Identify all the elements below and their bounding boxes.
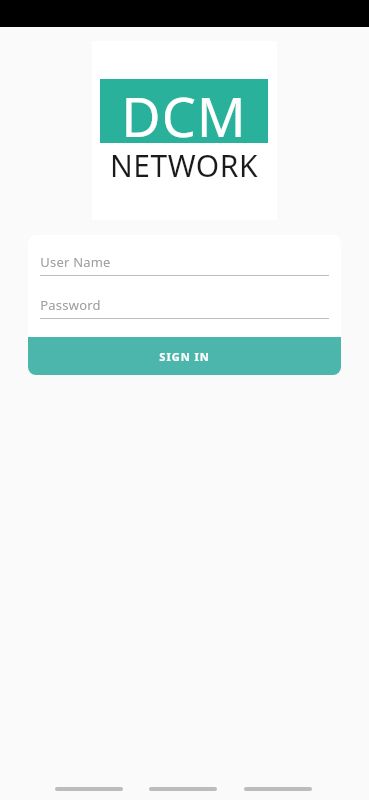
button[interactable]: Home	[149, 779, 217, 799]
button[interactable]: SIGN IN	[28, 337, 341, 375]
staticText: User Name	[40, 253, 111, 271]
staticText: SIGN IN	[159, 349, 210, 364]
button[interactable]: Password	[40, 295, 329, 319]
button[interactable]: Recents	[244, 779, 312, 799]
staticText: DCM	[121, 79, 247, 143]
button[interactable]: User Name	[40, 252, 329, 276]
staticText: NETWORK	[110, 145, 258, 185]
staticText: Password	[40, 296, 101, 314]
button[interactable]: Back	[55, 779, 123, 799]
